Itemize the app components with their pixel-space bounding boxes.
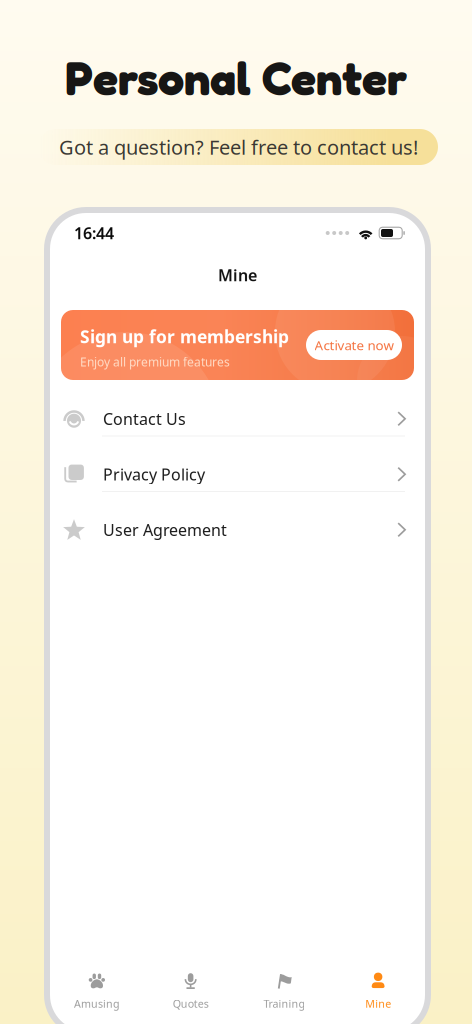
staticText: User Agreement	[103, 519, 227, 540]
staticText: Mine	[218, 264, 257, 286]
staticText: Quotes	[173, 996, 209, 1011]
staticText: Contact Us	[103, 408, 186, 429]
staticText: Sign up for membership	[80, 325, 289, 348]
staticText: Privacy Policy	[103, 464, 205, 485]
staticText: Amusing	[74, 996, 120, 1011]
staticText: 16:44	[74, 222, 114, 244]
button[interactable]: User Agreement	[63, 502, 409, 557]
staticText: Enjoy all premium features	[80, 354, 230, 370]
button[interactable]: Quotes	[144, 971, 238, 1011]
button[interactable]: Sign up for membership	[61, 310, 414, 380]
staticText: Training	[263, 996, 305, 1011]
staticText: Mine	[365, 996, 391, 1011]
button[interactable]: Training	[237, 971, 331, 1011]
button[interactable]: Contact Us	[63, 391, 409, 446]
staticText: Personal Center	[65, 50, 407, 106]
staticText: Got a question? Feel free to contact us!	[59, 134, 418, 160]
button[interactable]: Amusing	[50, 971, 144, 1011]
staticText: Activate now	[314, 336, 393, 354]
button[interactable]: Mine	[331, 971, 425, 1011]
button[interactable]: Privacy Policy	[63, 446, 409, 502]
